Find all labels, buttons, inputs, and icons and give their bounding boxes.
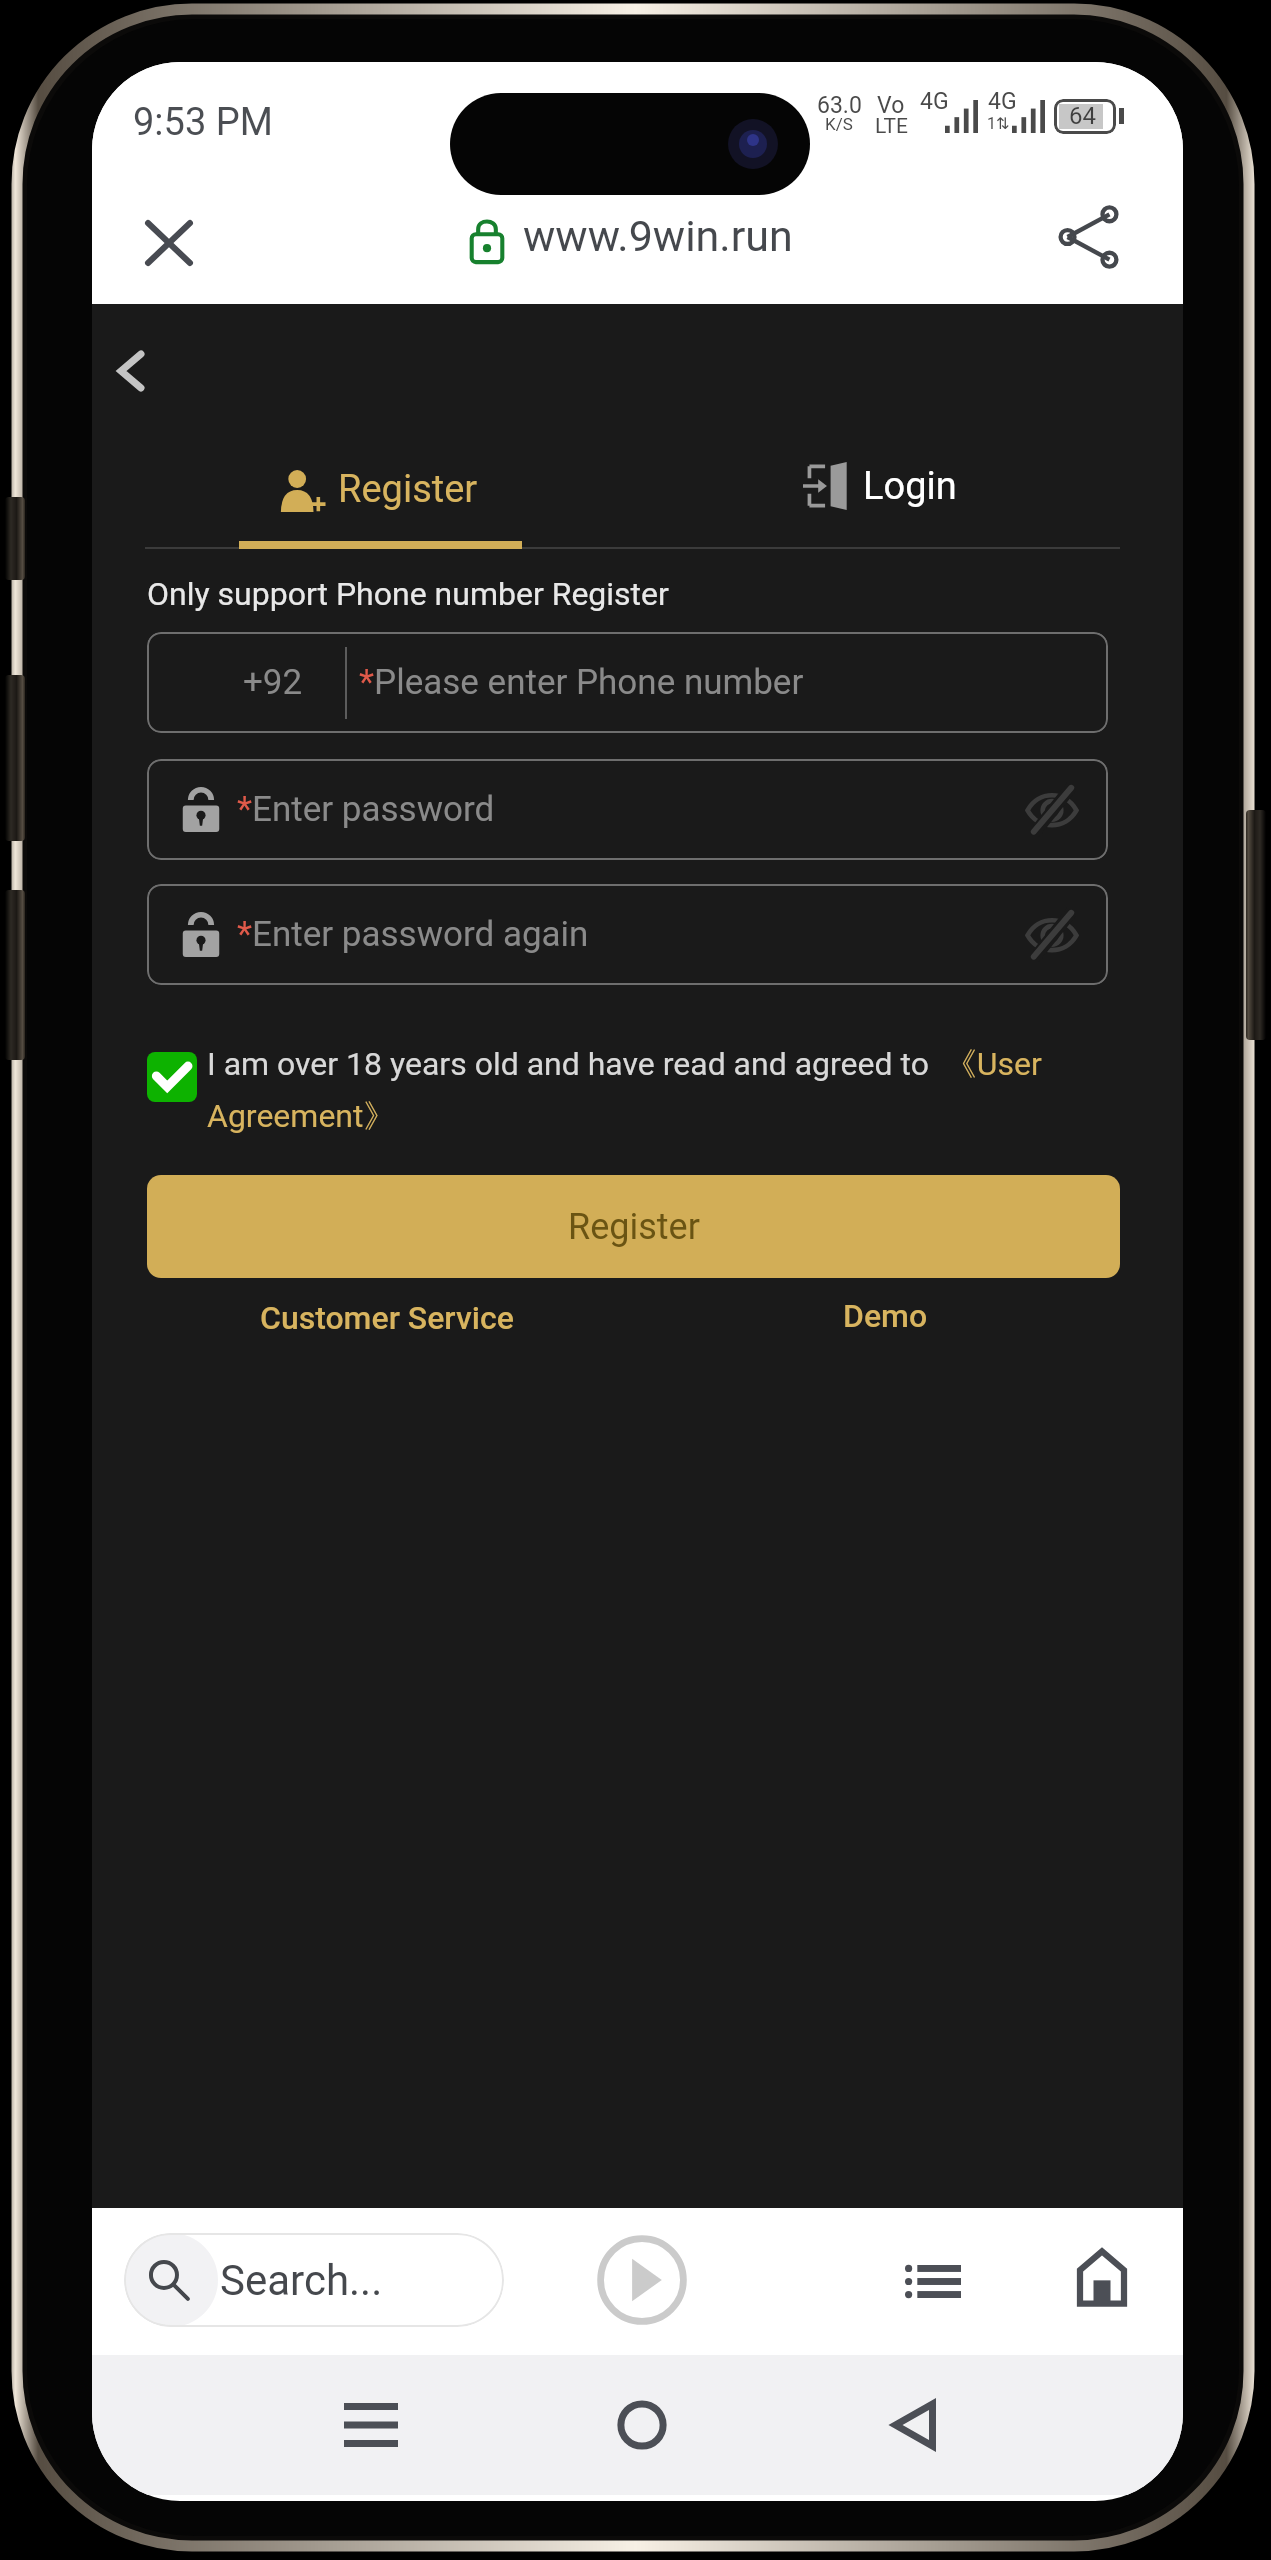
button[interactable]: Register [148, 434, 608, 544]
button[interactable]: Home [587, 2373, 697, 2477]
staticText: Only support Phone number Register [147, 575, 669, 613]
button[interactable]: Login [660, 431, 1100, 541]
button[interactable]: Home [1051, 2235, 1152, 2319]
staticText: 4G [920, 88, 949, 115]
staticText: 1⇅ [987, 114, 1010, 133]
button[interactable]: Register [147, 1175, 1120, 1278]
button[interactable]: +92 [147, 632, 1108, 733]
staticText: K/S [825, 114, 853, 134]
staticText: Register [338, 467, 478, 512]
staticText: Search... [220, 2256, 383, 2305]
button[interactable]: Demo [843, 1297, 928, 1335]
staticText: Login [863, 464, 957, 509]
button[interactable]: Customer Service [260, 1299, 514, 1337]
staticText: 9:53 PM [133, 100, 273, 145]
button[interactable]: I am over 18 checkbox [147, 1052, 197, 1102]
staticText: Customer Service [260, 1299, 514, 1337]
staticText: *Enter password [237, 789, 495, 830]
button[interactable]: I am over 18 years old and have read and… [207, 1044, 1048, 1136]
staticText: www.9win.run [523, 211, 793, 261]
staticText: *Please enter Phone number [359, 662, 804, 703]
staticText: Vo [877, 92, 905, 119]
button[interactable]: Search... [124, 2233, 504, 2327]
staticText: 64 [1069, 102, 1096, 130]
button[interactable]: *Enter password [147, 759, 1108, 860]
staticText: 63.0 [817, 92, 862, 119]
staticText: +92 [243, 662, 303, 703]
staticText: 4G [988, 88, 1017, 115]
button[interactable]: Back [859, 2373, 969, 2477]
button[interactable]: Recents [316, 2373, 426, 2477]
button[interactable]: Close [128, 203, 210, 283]
button[interactable]: Share [1059, 205, 1118, 269]
staticText: Register [568, 1206, 700, 1248]
staticText: LTE [875, 114, 908, 139]
staticText: Demo [843, 1297, 928, 1335]
staticText: *Enter password again [237, 914, 589, 955]
button[interactable]: Tabs [880, 2238, 986, 2324]
button[interactable]: *Enter password again [147, 884, 1108, 985]
button[interactable]: Play video [592, 2230, 692, 2330]
button[interactable]: Back [92, 328, 174, 412]
